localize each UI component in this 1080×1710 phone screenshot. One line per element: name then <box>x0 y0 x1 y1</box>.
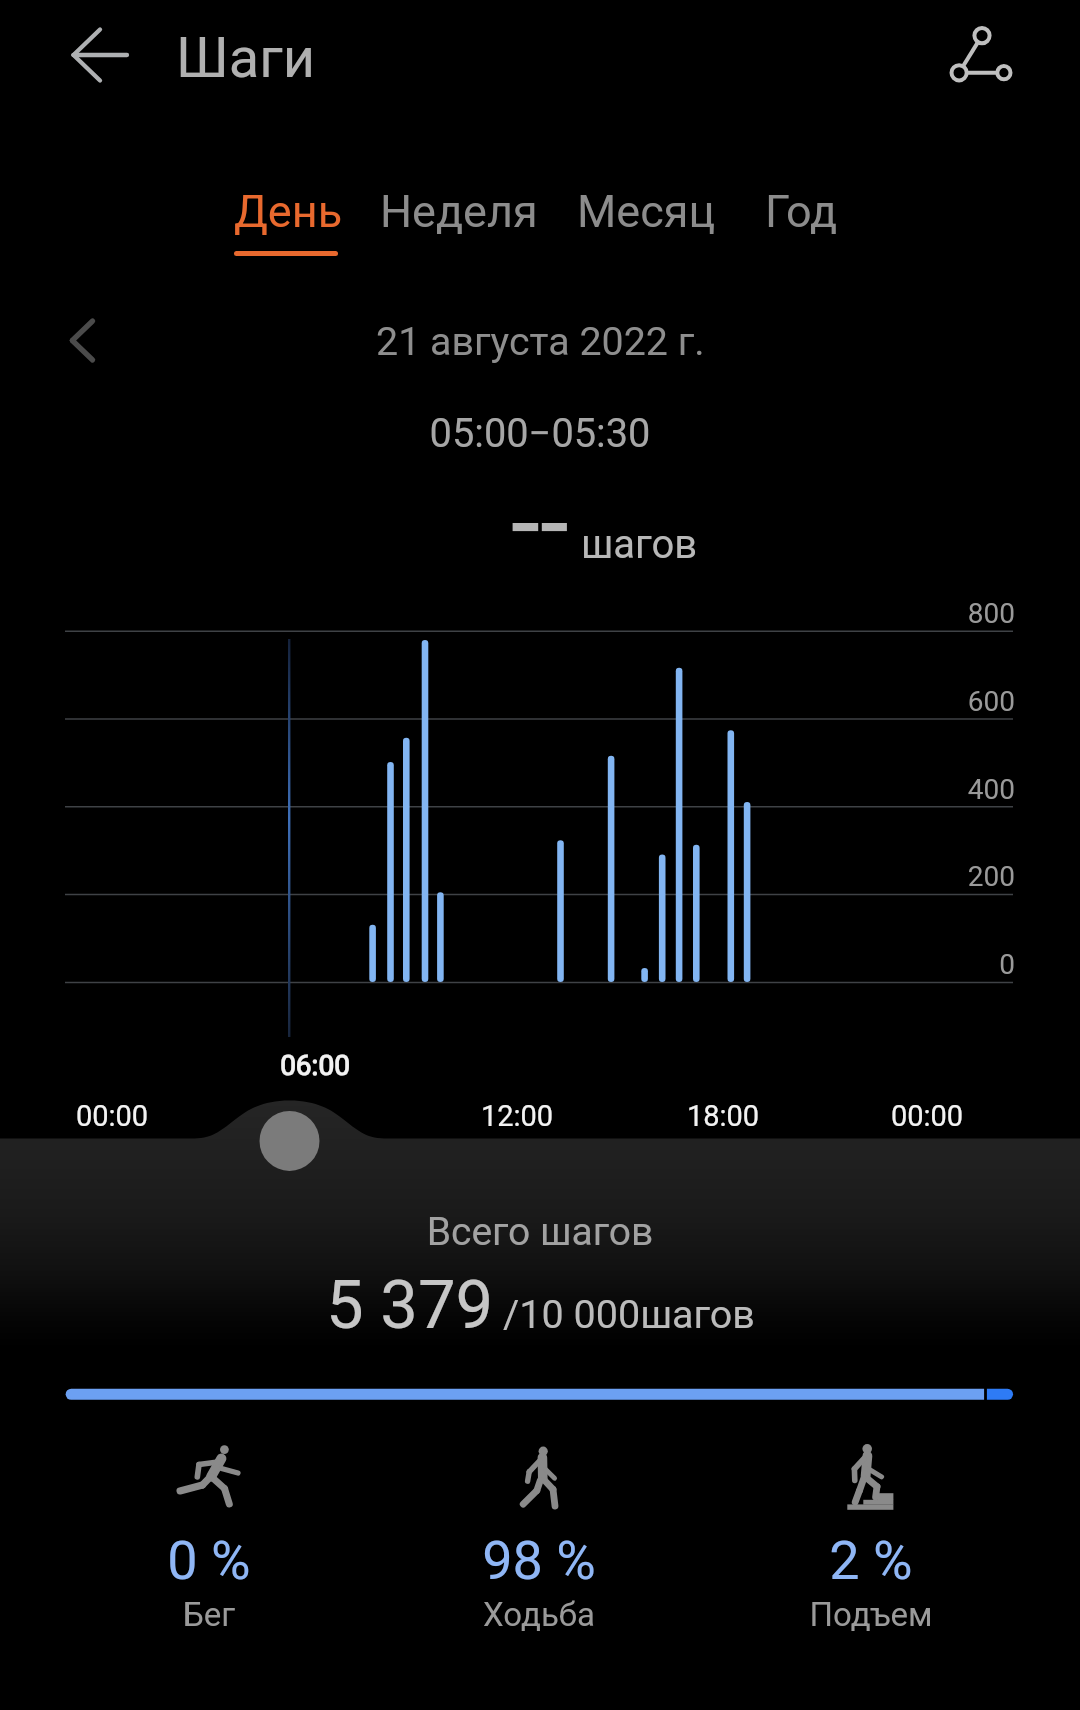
staticText: 5 379 /10 000шагов <box>326 1266 755 1345</box>
button[interactable]: 0 % <box>59 1434 359 1650</box>
staticText: 00:00 <box>0 1099 232 1133</box>
staticText: 00:00 <box>807 1099 1047 1133</box>
button[interactable]: Неделя <box>354 157 560 267</box>
staticText: 06:00 <box>195 1049 435 1082</box>
button[interactable]: Back <box>52 12 144 100</box>
staticText: 0 % <box>59 1529 359 1592</box>
staticText: 21 августа 2022 г. <box>376 318 705 364</box>
button[interactable]: Год <box>739 157 860 267</box>
button[interactable]: День <box>208 157 364 267</box>
staticText: Месяц <box>577 185 716 238</box>
staticText: 12:00 <box>397 1099 637 1133</box>
button[interactable]: 2 % <box>721 1434 1021 1650</box>
staticText: Год <box>765 185 838 238</box>
staticText: 800 <box>755 597 1015 630</box>
staticText: 18:00 <box>603 1099 843 1133</box>
staticText: 05:00−05:30 <box>0 410 1080 457</box>
staticText: 200 <box>755 860 1015 893</box>
staticText: 2 % <box>721 1529 1021 1592</box>
button[interactable]: Share <box>935 10 1029 102</box>
staticText: 400 <box>755 773 1015 806</box>
staticText: Ходьба <box>389 1595 689 1634</box>
staticText: Шаги <box>176 25 315 91</box>
staticText: 0 <box>755 948 1015 981</box>
staticText: Подъем <box>721 1595 1021 1634</box>
staticText: 98 % <box>389 1529 689 1592</box>
button[interactable]: Previous day <box>40 298 130 384</box>
staticText: 600 <box>755 685 1015 718</box>
button[interactable]: Месяц <box>551 157 737 267</box>
staticText: День <box>234 185 343 238</box>
button[interactable]: 21 августа 2022 г. <box>340 312 740 376</box>
staticText: шагов <box>581 521 698 568</box>
staticText: Неделя <box>380 185 538 238</box>
staticText: Бег <box>59 1595 359 1634</box>
staticText: Всего шагов <box>0 1209 1080 1255</box>
button[interactable]: 98 % <box>389 1434 689 1650</box>
